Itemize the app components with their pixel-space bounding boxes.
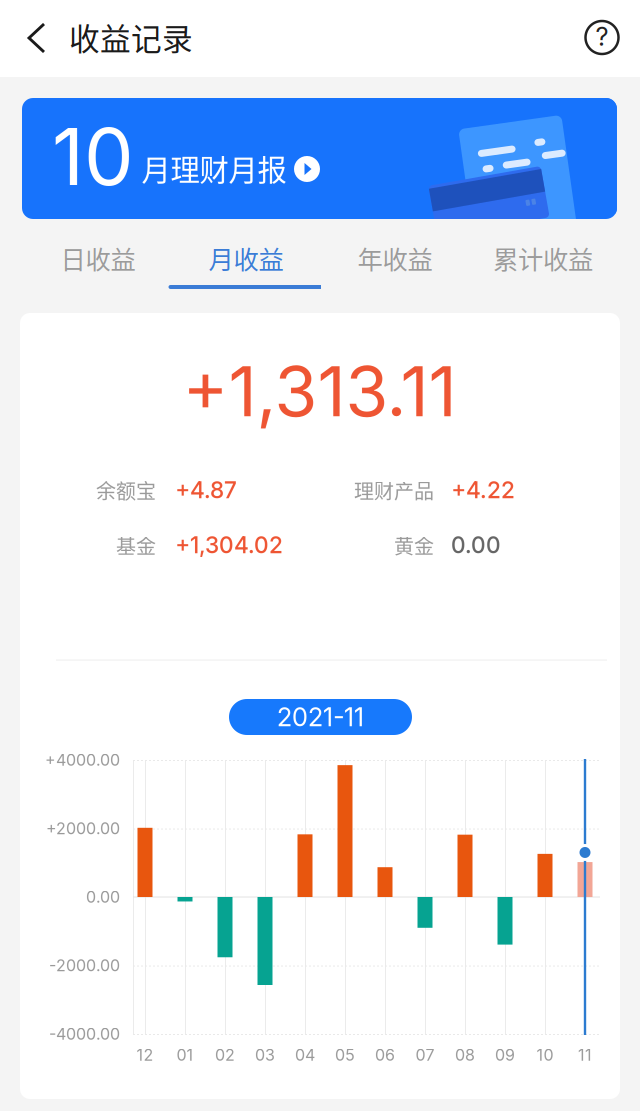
button[interactable]: Help [573,0,631,76]
staticText: 10 [536,1045,553,1065]
staticText: 08 [455,1045,475,1065]
staticText: 月收益 [208,240,283,276]
staticText: 理财产品 [354,475,434,504]
staticText: 11 [578,1045,592,1065]
staticText: +4000.00 [45,750,120,770]
button[interactable]: 2021-11 [229,699,412,735]
staticText: 01 [176,1045,193,1065]
staticText: 月理财月报 [141,147,286,189]
staticText: +1,304.02 [175,531,283,559]
staticText: 04 [295,1045,315,1065]
staticText: 12 [136,1045,153,1065]
staticText: +4.22 [451,476,515,504]
staticText: 06 [375,1045,395,1065]
staticText: 2021-11 [277,702,364,732]
staticText: ? [595,21,608,52]
staticText: 黄金 [394,530,434,559]
staticText: 09 [495,1045,515,1065]
staticText: -2000.00 [49,956,120,975]
staticText: +2000.00 [46,819,120,838]
staticText: -4000.00 [49,1024,120,1044]
button[interactable]: Back [7,0,65,76]
staticText: 收益记录 [69,15,193,59]
staticText: 05 [335,1045,355,1065]
staticText: +1,313.11 [182,349,456,433]
staticText: 03 [255,1045,275,1065]
button[interactable]: 累计收益 [469,219,617,313]
staticText: 余额宝 [96,475,156,504]
button[interactable]: 10 [22,98,617,219]
staticText: 0.00 [86,887,120,907]
staticText: +4.87 [175,476,237,504]
staticText: 10 [52,109,134,204]
staticText: 07 [415,1045,434,1065]
button[interactable]: 日收益 [24,219,172,313]
staticText: 累计收益 [493,240,593,276]
button[interactable]: 年收益 [321,219,469,313]
staticText: 基金 [116,530,156,559]
staticText: 年收益 [357,240,432,276]
staticText: 02 [215,1045,235,1065]
staticText: 日收益 [60,240,135,276]
staticText: 0.00 [451,531,501,559]
button[interactable]: 月收益 [172,219,320,313]
